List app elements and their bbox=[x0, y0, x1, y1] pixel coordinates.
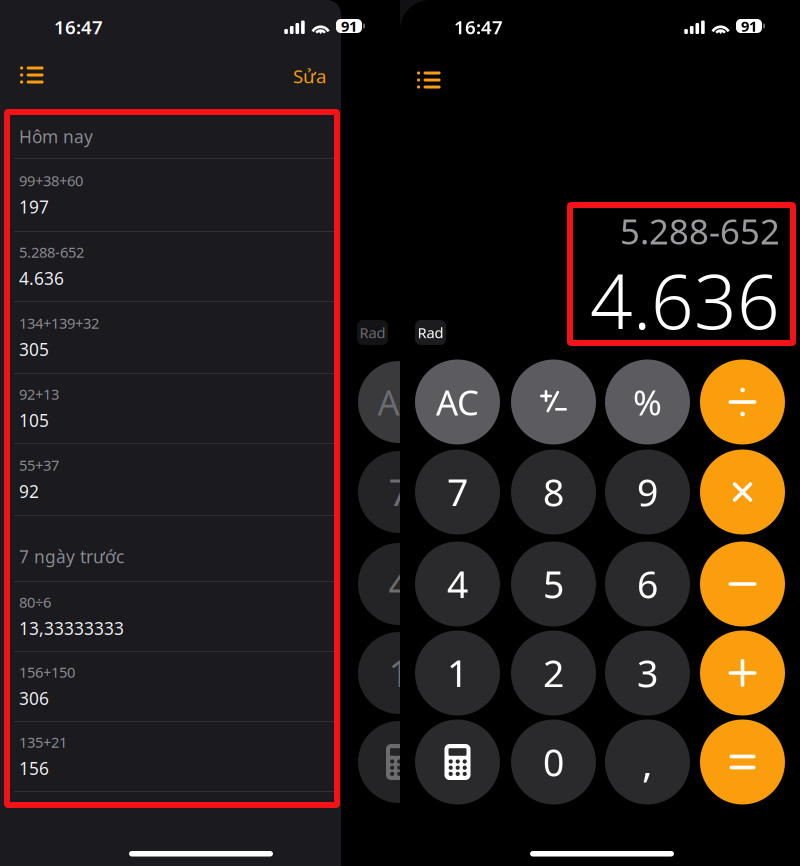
button[interactable]: 6 bbox=[605, 541, 690, 626]
button[interactable] bbox=[700, 719, 785, 804]
button[interactable]: 135+21 bbox=[0, 721, 340, 791]
staticText: 1 bbox=[447, 648, 468, 698]
button[interactable]: AC bbox=[415, 359, 500, 444]
staticText: Rad bbox=[359, 323, 385, 342]
button[interactable]: History bbox=[405, 59, 453, 101]
button[interactable]: 156+150 bbox=[0, 651, 340, 721]
button[interactable]: 3 bbox=[605, 630, 690, 715]
staticText: 92 bbox=[19, 480, 39, 503]
staticText: 5.288-652 bbox=[620, 208, 780, 254]
button[interactable]: 2 bbox=[511, 630, 596, 715]
button[interactable]: 0 bbox=[511, 719, 596, 804]
button[interactable]: 4 bbox=[415, 541, 500, 626]
button[interactable]: History bbox=[8, 54, 56, 96]
button[interactable]: 8 bbox=[511, 449, 596, 534]
staticText: 7 bbox=[447, 467, 468, 517]
staticText: 91 bbox=[741, 16, 757, 36]
staticText: 4 bbox=[388, 559, 409, 609]
staticText: Hôm nay bbox=[19, 125, 93, 148]
staticText: 6 bbox=[637, 559, 658, 609]
button[interactable]: % bbox=[605, 359, 690, 444]
button[interactable]: Sửa bbox=[276, 56, 326, 96]
staticText: 197 bbox=[19, 195, 49, 218]
button[interactable]: 7 bbox=[415, 449, 500, 534]
staticText: 7 bbox=[388, 467, 409, 517]
staticText: 55+37 bbox=[19, 455, 59, 475]
staticText: % bbox=[633, 379, 662, 425]
staticText: 92+13 bbox=[19, 384, 59, 404]
button[interactable] bbox=[700, 630, 785, 715]
button[interactable]: 5 bbox=[511, 541, 596, 626]
staticText: 16:47 bbox=[54, 15, 103, 39]
staticText: 9 bbox=[637, 467, 658, 517]
button[interactable]: 1 bbox=[415, 630, 500, 715]
staticText: , bbox=[642, 735, 653, 788]
staticText: 135+21 bbox=[19, 732, 67, 752]
staticText: 156 bbox=[19, 757, 49, 780]
staticText: 305 bbox=[19, 338, 49, 361]
staticText: 3 bbox=[637, 648, 658, 698]
staticText: 5.288-652 bbox=[19, 242, 84, 262]
staticText: 156+150 bbox=[19, 662, 75, 682]
staticText: 2 bbox=[543, 648, 564, 698]
button[interactable] bbox=[415, 719, 500, 804]
staticText: Sửa bbox=[293, 64, 326, 88]
staticText: 4.636 bbox=[590, 250, 780, 350]
button[interactable] bbox=[511, 359, 596, 444]
button[interactable] bbox=[700, 359, 785, 444]
staticText: 7 ngày trước bbox=[19, 545, 124, 568]
staticText: 0 bbox=[543, 737, 564, 787]
button[interactable]: 5.288-652 bbox=[0, 231, 340, 301]
staticText: 5 bbox=[543, 559, 564, 609]
staticText: 4 bbox=[447, 559, 468, 609]
staticText: 80÷6 bbox=[19, 592, 51, 612]
button[interactable]: 92+13 bbox=[0, 373, 340, 443]
staticText: 16:47 bbox=[454, 15, 503, 39]
button[interactable]: 134+139+32 bbox=[0, 301, 340, 373]
staticText: Rad bbox=[417, 323, 443, 342]
staticText: 13,33333333 bbox=[19, 617, 124, 640]
button[interactable]: 80÷6 bbox=[0, 581, 340, 651]
staticText: 1 bbox=[388, 648, 409, 698]
button[interactable]: 55+37 bbox=[0, 443, 340, 515]
staticText: 4.636 bbox=[19, 267, 64, 290]
staticText: 8 bbox=[543, 467, 564, 517]
button[interactable] bbox=[700, 449, 785, 534]
button[interactable] bbox=[700, 541, 785, 626]
staticText: 306 bbox=[19, 687, 49, 710]
staticText: 134+139+32 bbox=[19, 313, 99, 333]
staticText: 91 bbox=[341, 16, 357, 36]
staticText: AC bbox=[377, 379, 420, 425]
staticText: AC bbox=[436, 379, 479, 425]
button[interactable]: 99+38+60 bbox=[0, 158, 340, 231]
button[interactable]: 9 bbox=[605, 449, 690, 534]
staticText: 99+38+60 bbox=[19, 171, 83, 190]
staticText: 105 bbox=[19, 409, 49, 432]
button[interactable]: , bbox=[605, 719, 690, 804]
